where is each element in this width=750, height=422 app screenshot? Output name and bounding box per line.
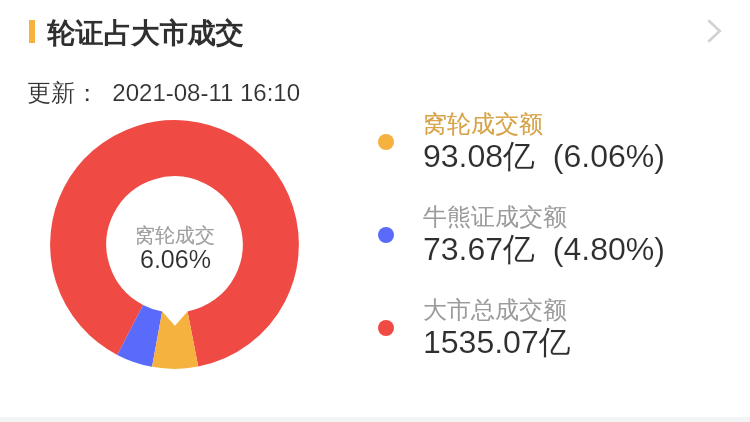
- staticText: 93.08亿 (6.06%): [423, 136, 665, 176]
- staticText: 窝轮成交额: [423, 109, 543, 139]
- staticText: 大市总成交额: [423, 295, 567, 325]
- button[interactable]: 大市总成交额: [372, 292, 571, 360]
- staticText: 轮证占大市成交: [47, 16, 243, 51]
- staticText: 牛熊证成交额: [423, 202, 567, 232]
- staticText: 6.06%: [140, 245, 211, 273]
- staticText: 更新： 2021-08-11 16:10: [27, 78, 301, 108]
- staticText: 1535.07亿: [423, 322, 571, 362]
- button[interactable]: 牛熊证成交额: [372, 199, 665, 267]
- button[interactable]: 窝轮成交额: [372, 106, 665, 174]
- staticText: 窝轮成交: [135, 223, 215, 248]
- button[interactable]: More: [692, 9, 736, 53]
- button[interactable]: 轮证占大市成交: [0, 0, 750, 62]
- staticText: 73.67亿 (4.80%): [423, 229, 665, 269]
